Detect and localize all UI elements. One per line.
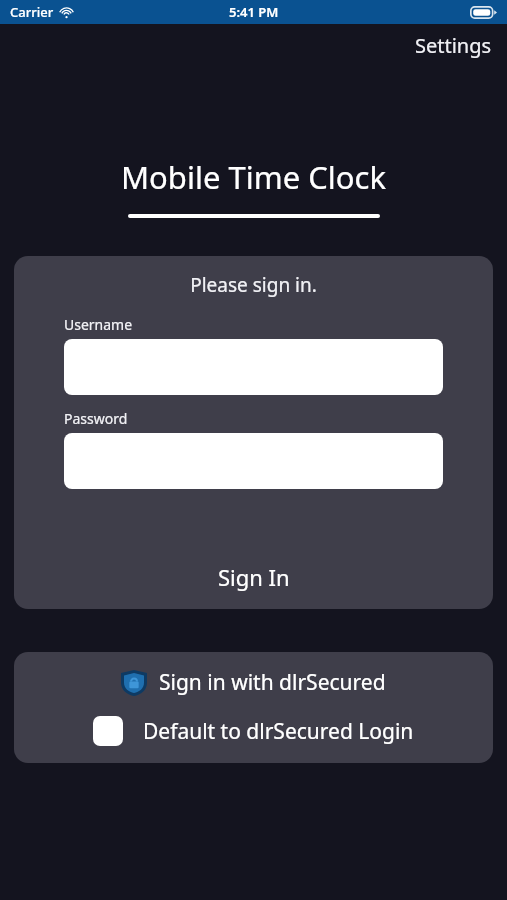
staticText: Sign in with dlrSecured	[159, 668, 386, 697]
button[interactable]: Sign in with dlrSecured	[14, 664, 493, 701]
staticText: Sign In	[218, 562, 290, 592]
button[interactable]: Password field	[64, 433, 443, 489]
staticText: Mobile Time Clock	[0, 156, 507, 198]
staticText: Please sign in.	[14, 272, 493, 298]
staticText: Username	[64, 315, 133, 334]
staticText: Settings	[415, 32, 492, 59]
staticText: 5:41 PM	[229, 3, 279, 21]
button[interactable]: Sign In	[14, 559, 493, 595]
staticText: Default to dlrSecured Login	[143, 717, 414, 746]
button[interactable]: Settings	[400, 25, 507, 66]
staticText: Carrier	[10, 3, 54, 21]
staticText: Password	[64, 409, 128, 428]
button[interactable]: Username field	[64, 339, 443, 395]
button[interactable]: Default to dlrSecured Login	[14, 713, 493, 749]
